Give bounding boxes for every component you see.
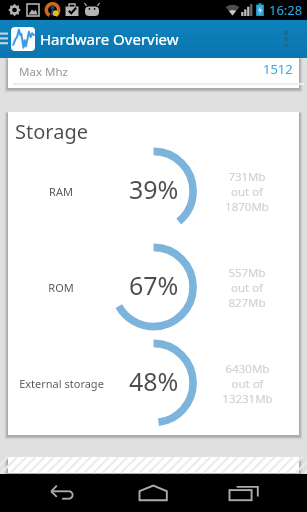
button[interactable]: ROM: [8, 239, 299, 335]
button[interactable]: Open navigation drawer: [0, 20, 10, 58]
staticText: RAM: [49, 184, 73, 199]
staticText: 557Mb out of 827Mb: [228, 265, 266, 310]
staticText: 48%: [129, 364, 179, 398]
staticText: 39%: [129, 172, 179, 206]
button[interactable]: Home: [122, 474, 184, 512]
button[interactable]: Recent apps: [218, 474, 280, 512]
staticText: Max Mhz: [19, 64, 68, 80]
button[interactable]: RAM: [8, 143, 299, 239]
staticText: 6430Mb out of 13231Mb: [222, 361, 273, 406]
staticText: ROM: [48, 280, 74, 295]
button[interactable]: Max Mhz: [8, 58, 299, 88]
button[interactable]: External storage: [8, 335, 299, 431]
staticText: 67%: [129, 268, 179, 302]
staticText: 1512: [263, 60, 293, 78]
staticText: External storage: [19, 376, 104, 391]
staticText: Storage: [15, 118, 88, 145]
staticText: 16:28: [269, 1, 303, 19]
staticText: 731Mb out of 1870Mb: [225, 169, 269, 214]
button[interactable]: Back: [22, 474, 88, 512]
staticText: Hardware Overview: [40, 29, 179, 49]
button[interactable]: More options: [279, 20, 307, 58]
button[interactable]: App icon: [11, 27, 35, 51]
